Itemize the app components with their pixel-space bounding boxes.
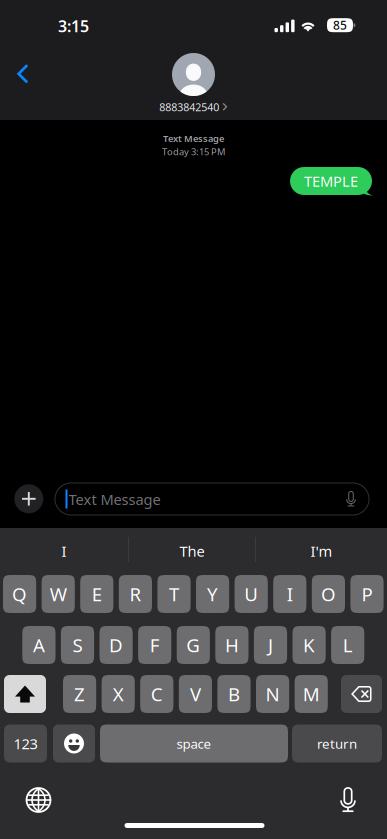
staticText: 123 (13, 734, 37, 753)
button[interactable]: Emoji keyboard (53, 724, 95, 762)
button[interactable]: R (119, 575, 152, 613)
button[interactable]: Add attachment (14, 484, 43, 513)
staticText: Z (74, 682, 85, 706)
staticText: B (228, 682, 240, 706)
button[interactable]: S (61, 626, 94, 664)
button[interactable]: V (179, 675, 212, 713)
staticText: H (225, 633, 239, 657)
staticText: U (244, 582, 258, 606)
button[interactable]: F (138, 626, 171, 664)
staticText: 8883842540 (159, 100, 219, 114)
button[interactable]: Y (196, 575, 229, 613)
staticText: return (317, 735, 357, 752)
button[interactable]: I'm (256, 528, 387, 574)
button[interactable]: Next keyboard (16, 779, 60, 821)
staticText: M (303, 682, 320, 706)
staticText: A (33, 633, 45, 657)
button[interactable]: Record audio message (337, 485, 365, 513)
button[interactable]: P (350, 575, 384, 613)
button[interactable]: T (157, 575, 191, 613)
button[interactable]: O (312, 575, 345, 613)
staticText: K (303, 633, 315, 657)
button[interactable]: Back (1, 52, 45, 96)
staticText: TEMPLE (304, 171, 358, 191)
button[interactable]: 8883842540, contact details (108, 52, 278, 113)
button[interactable]: L (331, 626, 364, 664)
staticText: I (287, 582, 293, 606)
button[interactable]: E (80, 575, 113, 613)
button[interactable]: Q (3, 575, 36, 613)
button[interactable]: Shift (4, 675, 46, 713)
button[interactable]: X (102, 675, 135, 713)
button[interactable]: J (254, 626, 287, 664)
button[interactable]: A (22, 626, 55, 664)
button[interactable]: H (215, 626, 248, 664)
staticText: R (129, 582, 141, 606)
staticText: I'm (310, 541, 332, 561)
button[interactable]: I (273, 575, 306, 613)
staticText: O (321, 582, 336, 606)
button[interactable]: W (42, 575, 75, 613)
button[interactable]: M (295, 675, 328, 713)
staticText: C (151, 682, 163, 706)
button[interactable]: The (129, 528, 255, 574)
button[interactable]: N (256, 675, 289, 713)
button[interactable]: Text Message field (55, 483, 369, 515)
button[interactable]: D (99, 626, 133, 664)
staticText: T (169, 582, 179, 606)
staticText: X (113, 682, 124, 706)
staticText: W (50, 582, 67, 606)
staticText: 85 (333, 17, 347, 33)
staticText: Y (207, 582, 218, 606)
staticText: V (190, 682, 201, 706)
button[interactable]: B (217, 675, 251, 713)
button[interactable]: 123 (4, 724, 47, 762)
button[interactable]: U (235, 575, 268, 613)
staticText: D (109, 633, 123, 657)
button[interactable]: C (140, 675, 173, 713)
staticText: P (361, 582, 372, 606)
staticText: N (266, 682, 280, 706)
staticText: E (92, 582, 102, 606)
button[interactable]: Z (63, 675, 96, 713)
staticText: S (72, 633, 82, 657)
button[interactable]: return (292, 724, 382, 762)
staticText: space (176, 735, 211, 752)
staticText: The (179, 541, 204, 561)
staticText: I (61, 541, 66, 561)
staticText: Today 3:15 PM (162, 145, 225, 158)
staticText: Text Message (68, 489, 160, 509)
staticText: G (186, 633, 200, 657)
button[interactable]: K (292, 626, 326, 664)
button[interactable]: G (177, 626, 210, 664)
staticText: Text Message (163, 132, 224, 144)
staticText: F (150, 633, 160, 657)
button[interactable]: I (0, 528, 128, 574)
staticText: Q (12, 582, 27, 606)
staticText: 3:15 (58, 15, 89, 37)
button[interactable]: Dictate (326, 779, 370, 821)
staticText: L (343, 633, 353, 657)
staticText: J (268, 633, 273, 657)
button[interactable]: space (100, 724, 288, 762)
button[interactable]: Delete (341, 675, 382, 713)
